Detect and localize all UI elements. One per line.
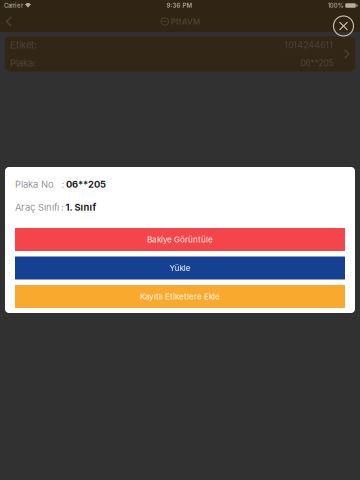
button[interactable]: Kayıtlı Etiketlere Ekle	[15, 285, 345, 308]
staticText: :	[61, 179, 64, 190]
staticText: PttAVM	[171, 17, 200, 26]
staticText: Etiket:	[10, 39, 37, 51]
staticText: 1014244611	[284, 40, 333, 50]
staticText: Plaka:	[10, 57, 36, 69]
staticText: Kayıtlı Etiketlere Ekle	[140, 292, 220, 301]
staticText: Bakiye Görüntüle	[147, 235, 213, 244]
staticText: 100%	[328, 2, 344, 9]
staticText: Yükle	[169, 263, 190, 273]
button[interactable]: Etiket:	[5, 36, 355, 71]
staticText: 06**205	[66, 179, 106, 190]
staticText: :	[61, 202, 64, 213]
staticText: 9:36 PM	[166, 2, 192, 9]
staticText: 1. Sınıf	[65, 202, 96, 213]
staticText: Plaka No	[15, 179, 54, 190]
staticText: Carrier	[4, 2, 23, 9]
button[interactable]: Back	[0, 11, 18, 32]
button[interactable]: Yükle	[15, 256, 345, 279]
button[interactable]: Close	[328, 11, 358, 41]
button[interactable]: Bakiye Görüntüle	[15, 228, 345, 251]
staticText: Araç Sınıfı	[15, 202, 59, 213]
staticText: 06**205	[300, 58, 333, 68]
